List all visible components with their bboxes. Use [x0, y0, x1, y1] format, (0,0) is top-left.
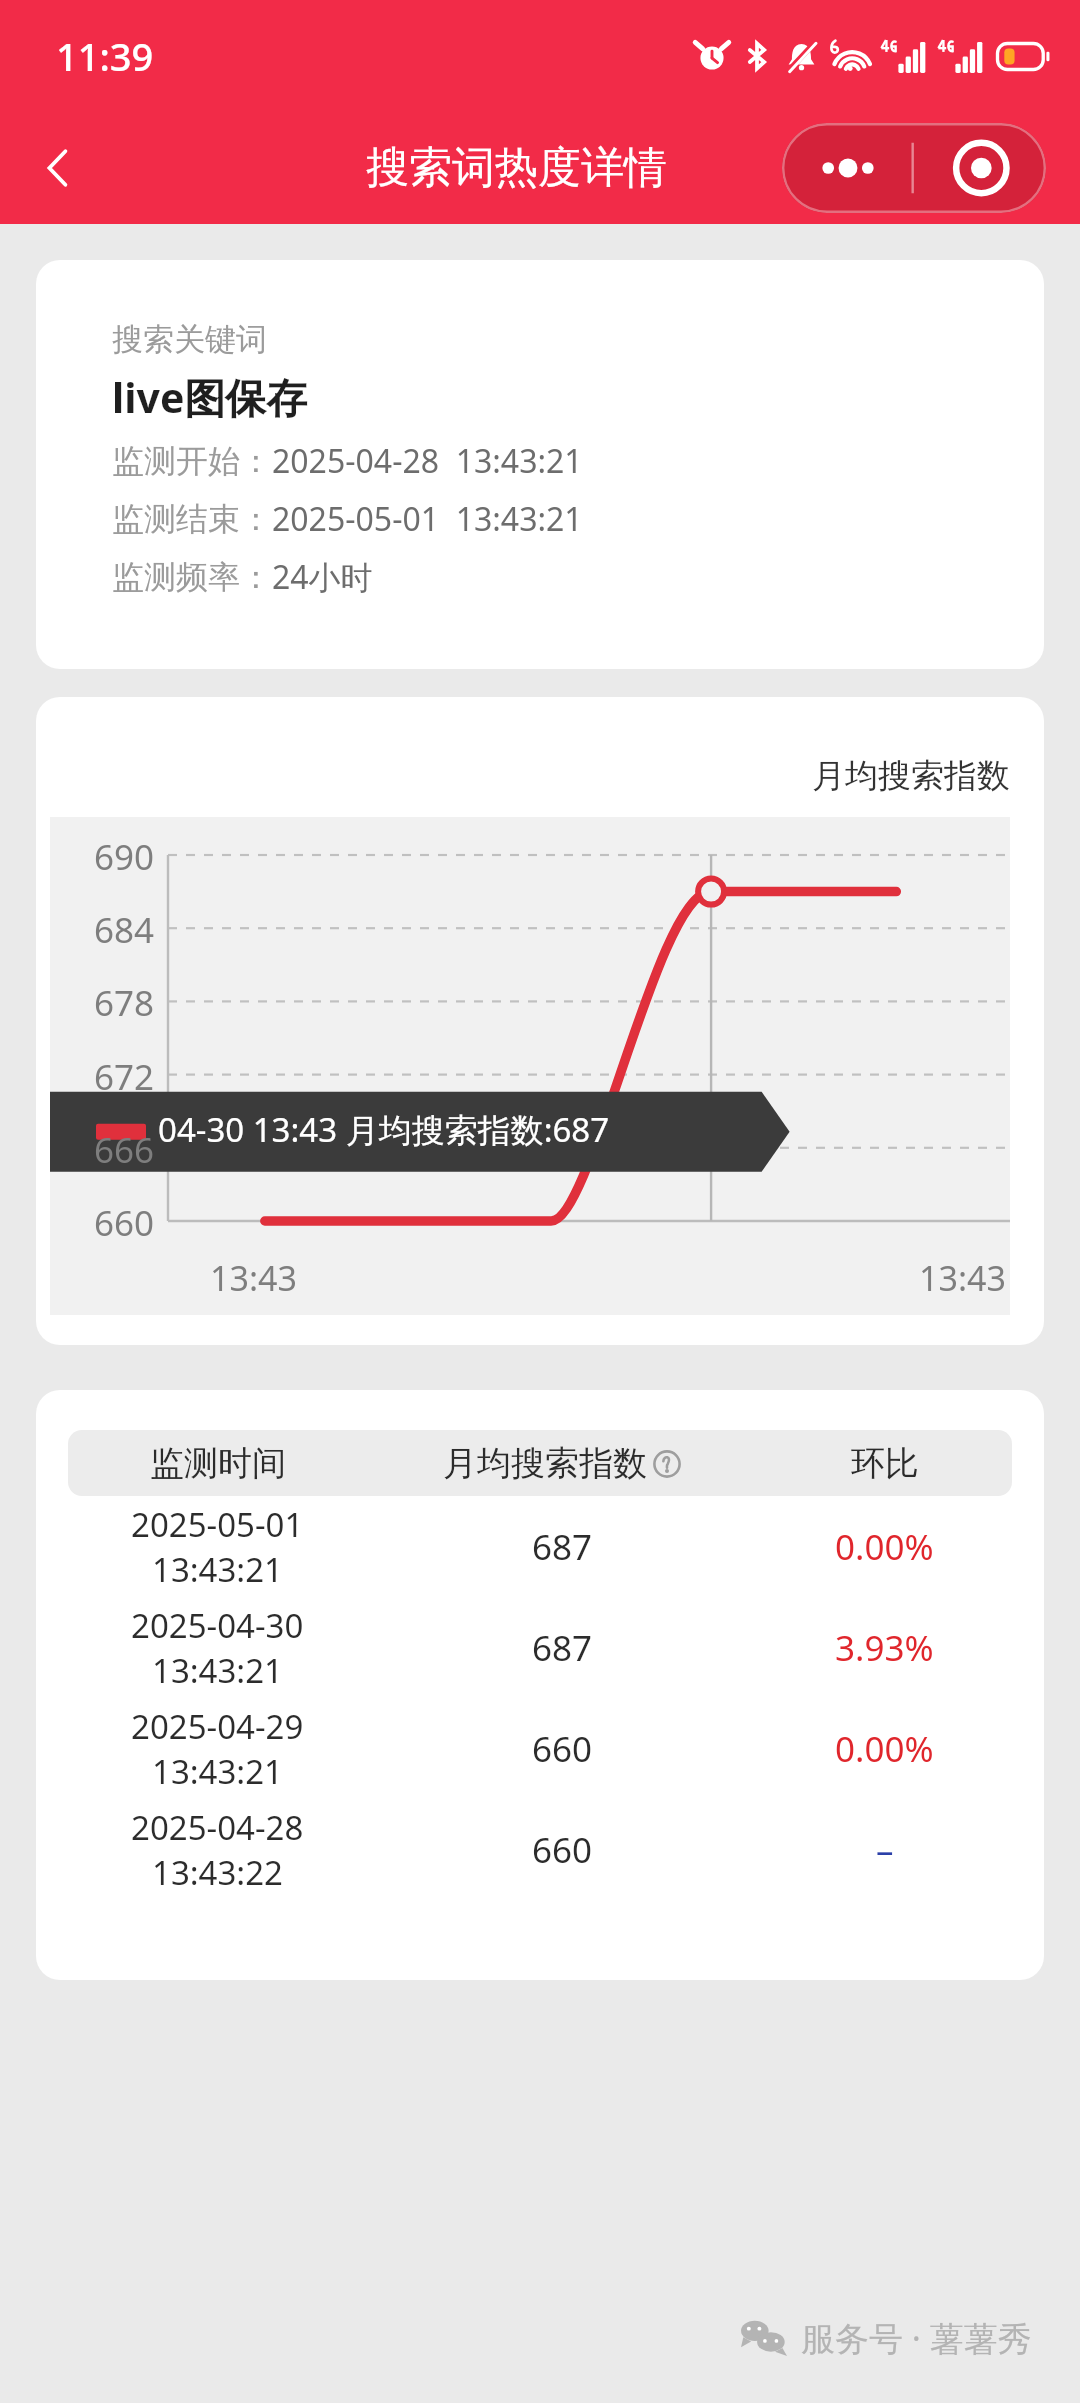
button[interactable]: 服务号 · 薯薯秀: [0, 2315, 1032, 2361]
staticText: 690: [50, 833, 154, 881]
staticText: 660: [50, 1199, 154, 1247]
staticText: 服务号 · 薯薯秀: [801, 2315, 1032, 2361]
staticText: 监测结束：: [112, 499, 272, 539]
staticText: 660: [532, 1725, 593, 1773]
staticText: 687: [532, 1624, 593, 1672]
staticText: 660: [532, 1826, 593, 1874]
staticText: 搜索关键词: [112, 320, 267, 359]
staticText: 24小时: [272, 555, 373, 599]
staticText: 环比: [851, 1442, 919, 1485]
staticText: 687: [532, 1523, 593, 1571]
staticText: 3.93%: [835, 1624, 934, 1672]
staticText: 0.00%: [835, 1725, 934, 1773]
staticText: 0.00%: [835, 1523, 934, 1571]
staticText: 04-30 13:43 月均搜索指数:687: [158, 1107, 610, 1152]
staticText: 684: [50, 906, 154, 954]
button[interactable]: 2025-04-28: [68, 1799, 1012, 1900]
staticText: 13:43: [210, 1255, 297, 1301]
staticText: 2025-05-01: [131, 1502, 304, 1547]
staticText: 2025-04-28: [131, 1805, 304, 1850]
staticText: 13:43:21: [152, 1648, 283, 1693]
staticText: 2025-04-30: [131, 1603, 304, 1648]
staticText: 13:43:22: [152, 1850, 283, 1895]
button[interactable]: 2025-04-30: [68, 1597, 1012, 1698]
button[interactable]: 2025-05-01: [68, 1496, 1012, 1597]
staticText: 11:39: [56, 30, 154, 82]
staticText: 2025-04-28 13:43:21: [272, 439, 583, 483]
staticText: –: [876, 1826, 894, 1874]
staticText: 搜索词热度详情: [366, 141, 667, 195]
button[interactable]: 2025-04-29: [68, 1698, 1012, 1799]
staticText: 666: [50, 1126, 154, 1174]
button[interactable]: Back: [16, 125, 102, 211]
button[interactable]: 指标说明: [653, 1450, 681, 1478]
staticText: 672: [50, 1053, 154, 1101]
staticText: 月均搜索指数: [812, 755, 1010, 797]
staticText: 13:43: [919, 1255, 1006, 1301]
staticText: live图保存: [112, 369, 308, 425]
staticText: 13:43:21: [152, 1749, 283, 1794]
button[interactable]: More and Target: [782, 123, 1046, 213]
staticText: 2025-05-01 13:43:21: [272, 497, 583, 541]
staticText: 监测时间: [150, 1442, 286, 1485]
staticText: 监测开始：: [112, 441, 272, 481]
staticText: 监测频率：: [112, 557, 272, 597]
staticText: 678: [50, 979, 154, 1027]
staticText: 13:43:21: [152, 1547, 283, 1592]
staticText: 月均搜索指数: [443, 1442, 647, 1485]
staticText: 2025-04-29: [131, 1704, 304, 1749]
